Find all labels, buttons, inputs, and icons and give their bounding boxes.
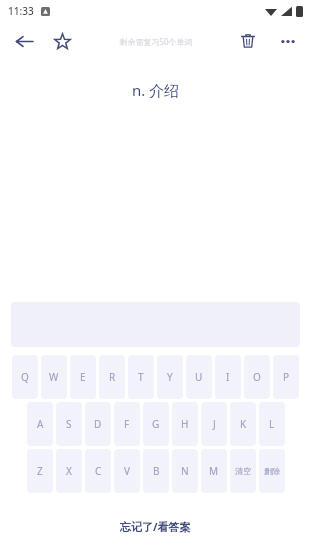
staticText: V — [124, 464, 130, 478]
staticText: H — [181, 417, 189, 431]
button[interactable]: O — [244, 355, 270, 399]
button[interactable]: Delete — [231, 24, 265, 58]
button[interactable]: More options — [271, 24, 305, 58]
staticText: W — [49, 370, 59, 384]
button[interactable]: L — [259, 402, 285, 446]
staticText: I — [226, 370, 230, 384]
staticText: U — [195, 370, 203, 384]
button[interactable]: Favorite — [45, 24, 79, 58]
staticText: P — [283, 370, 290, 384]
staticText: Q — [21, 370, 29, 384]
button[interactable]: J — [201, 402, 227, 446]
button[interactable]: T — [128, 355, 154, 399]
button[interactable]: N — [172, 449, 198, 493]
staticText: T — [138, 370, 144, 384]
button[interactable]: M — [201, 449, 227, 493]
button[interactable]: W — [41, 355, 67, 399]
staticText: 忘记了/看答案 — [120, 519, 191, 534]
staticText: K — [240, 417, 247, 431]
staticText: C — [95, 464, 102, 478]
staticText: J — [213, 417, 216, 431]
staticText: A — [37, 417, 44, 431]
staticText: N — [181, 464, 189, 478]
staticText: Y — [167, 370, 173, 384]
staticText: G — [152, 417, 160, 431]
button[interactable]: 删除 — [259, 449, 285, 493]
button[interactable]: Y — [157, 355, 183, 399]
button[interactable]: B — [143, 449, 169, 493]
button[interactable]: 忘记了/看答案 — [110, 515, 201, 538]
button[interactable]: E — [70, 355, 96, 399]
button[interactable]: R — [99, 355, 125, 399]
staticText: D — [94, 417, 102, 431]
staticText: O — [253, 370, 261, 384]
button[interactable]: Back — [6, 23, 42, 59]
button[interactable]: X — [56, 449, 82, 493]
button[interactable]: C — [85, 449, 111, 493]
staticText: Z — [37, 464, 43, 478]
button[interactable]: U — [186, 355, 212, 399]
button[interactable]: K — [230, 402, 256, 446]
staticText: F — [124, 417, 130, 431]
staticText: n. 介绍 — [132, 80, 180, 100]
staticText: X — [66, 464, 72, 478]
staticText: 11:33 — [8, 4, 34, 18]
button[interactable]: I — [215, 355, 241, 399]
staticText: S — [66, 417, 72, 431]
button[interactable]: P — [273, 355, 299, 399]
button[interactable]: Q — [12, 355, 38, 399]
staticText: L — [269, 417, 275, 431]
button[interactable]: F — [114, 402, 140, 446]
staticText: 删除 — [264, 466, 280, 476]
button[interactable]: G — [143, 402, 169, 446]
button[interactable]: S — [56, 402, 82, 446]
button[interactable]: H — [172, 402, 198, 446]
button[interactable]: V — [114, 449, 140, 493]
staticText: B — [153, 464, 160, 478]
button[interactable]: Z — [27, 449, 53, 493]
staticText: E — [80, 370, 86, 384]
button[interactable]: A — [27, 402, 53, 446]
staticText: 剩余需复习50个单词 — [119, 36, 193, 47]
staticText: 清空 — [235, 466, 251, 476]
staticText: R — [109, 370, 116, 384]
staticText: M — [209, 464, 219, 478]
button[interactable]: 清空 — [230, 449, 256, 493]
button[interactable]: D — [85, 402, 111, 446]
